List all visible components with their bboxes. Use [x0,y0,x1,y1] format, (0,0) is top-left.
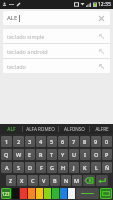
staticText: D [28,164,33,171]
staticText: ALF [7,126,16,132]
staticText: 2 [17,138,21,145]
staticText: ALFRE [95,126,109,132]
button[interactable]: B [50,175,60,186]
button[interactable]: H [58,162,68,173]
button[interactable]: Y [58,149,68,160]
staticText: E [28,151,32,158]
button[interactable]: ALE [3,11,110,25]
staticText: L [95,164,98,171]
button[interactable]: teclado simple [3,29,110,43]
button[interactable]: Clear text [97,14,106,23]
button[interactable]: O [91,149,101,160]
staticText: ALFA ROMEO [26,126,55,132]
button[interactable]: U [69,149,79,160]
staticText: 3 [28,138,32,145]
button[interactable]: ALFA ROMEO [23,124,58,134]
button[interactable]: Ñ [102,162,112,173]
staticText: T [50,151,54,158]
button[interactable]: P [102,149,112,160]
staticText: P [105,151,109,158]
button[interactable]: J [69,162,79,173]
button[interactable]: 9 [91,136,101,147]
button[interactable]: 1 [1,136,12,147]
staticText: U [72,151,77,158]
staticText: H [61,164,66,171]
button[interactable]: Q [1,149,12,160]
button[interactable]: N [61,175,71,186]
staticText: 8 [83,138,87,145]
staticText: O [94,151,99,158]
staticText: 12:35 [98,1,111,8]
staticText: Y [61,151,65,158]
button[interactable]: Z [6,175,16,186]
staticText: R [39,151,43,158]
button[interactable]: ALFONSO [59,124,89,134]
staticText: K [83,164,87,171]
staticText: M [74,177,80,184]
button[interactable]: 5 [47,136,57,147]
staticText: 7 [72,138,76,145]
button[interactable]: 0 [102,136,112,147]
staticText: W [16,151,22,158]
button[interactable]: M [72,175,82,186]
button[interactable]: Enter [96,175,108,186]
staticText: teclado simple [7,33,45,40]
button[interactable]: X [17,175,27,186]
button[interactable]: Keyboard settings [100,188,112,199]
button[interactable]: L [91,162,101,173]
button[interactable]: 2 [13,136,24,147]
button[interactable]: 7 [69,136,79,147]
button[interactable]: Space [76,188,99,199]
button[interactable]: 3 [25,136,35,147]
button[interactable]: K [80,162,90,173]
button[interactable]: W [13,149,24,160]
button[interactable]: 8 [80,136,90,147]
button[interactable]: T [47,149,57,160]
staticText: ALE [7,14,18,22]
other: Insert suggestion [97,62,106,71]
staticText: 1 [5,138,9,145]
staticText: F [40,164,43,171]
staticText: I [84,151,86,158]
button[interactable]: E [25,149,35,160]
button[interactable]: ALFRE [90,124,113,134]
staticText: V [42,177,46,184]
button[interactable]: teclado [3,59,110,73]
button[interactable]: 4 [36,136,46,147]
button[interactable]: teclado android [3,44,110,58]
staticText: 123 [2,191,10,197]
staticText: 9 [94,138,98,145]
button[interactable]: Backspace [83,175,95,186]
button[interactable]: V [39,175,49,186]
button[interactable]: I [80,149,90,160]
staticText: N [64,177,69,184]
button[interactable]: R [36,149,46,160]
button[interactable]: D [25,162,35,173]
button[interactable]: 6 [58,136,68,147]
button[interactable]: F [36,162,46,173]
other: Insert suggestion [97,47,106,56]
button[interactable]: 123 [1,188,11,199]
button[interactable]: A [1,162,12,173]
staticText: J [73,164,75,171]
staticText: 0 [105,138,109,145]
staticText: teclado android [7,48,48,55]
staticText: S [17,164,21,171]
button[interactable]: G [47,162,57,173]
button[interactable]: C [28,175,38,186]
staticText: Q [4,151,9,158]
staticText: teclado [7,63,26,70]
staticText: ALFONSO [64,126,85,132]
button[interactable]: ALF [0,124,22,134]
staticText: B [53,177,57,184]
staticText: G [50,164,54,171]
button[interactable]: S [13,162,24,173]
